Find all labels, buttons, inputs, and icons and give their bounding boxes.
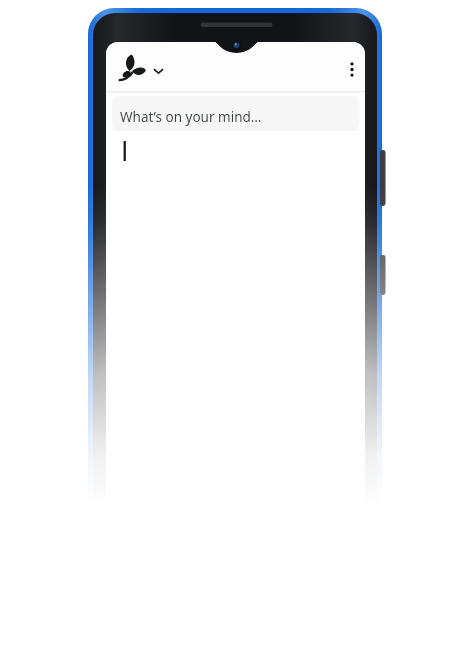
button[interactable]: Switch space [118, 54, 170, 86]
button[interactable] [112, 96, 359, 130]
staticText: What’s on your mind… [120, 108, 262, 126]
button[interactable]: More options [338, 54, 366, 86]
